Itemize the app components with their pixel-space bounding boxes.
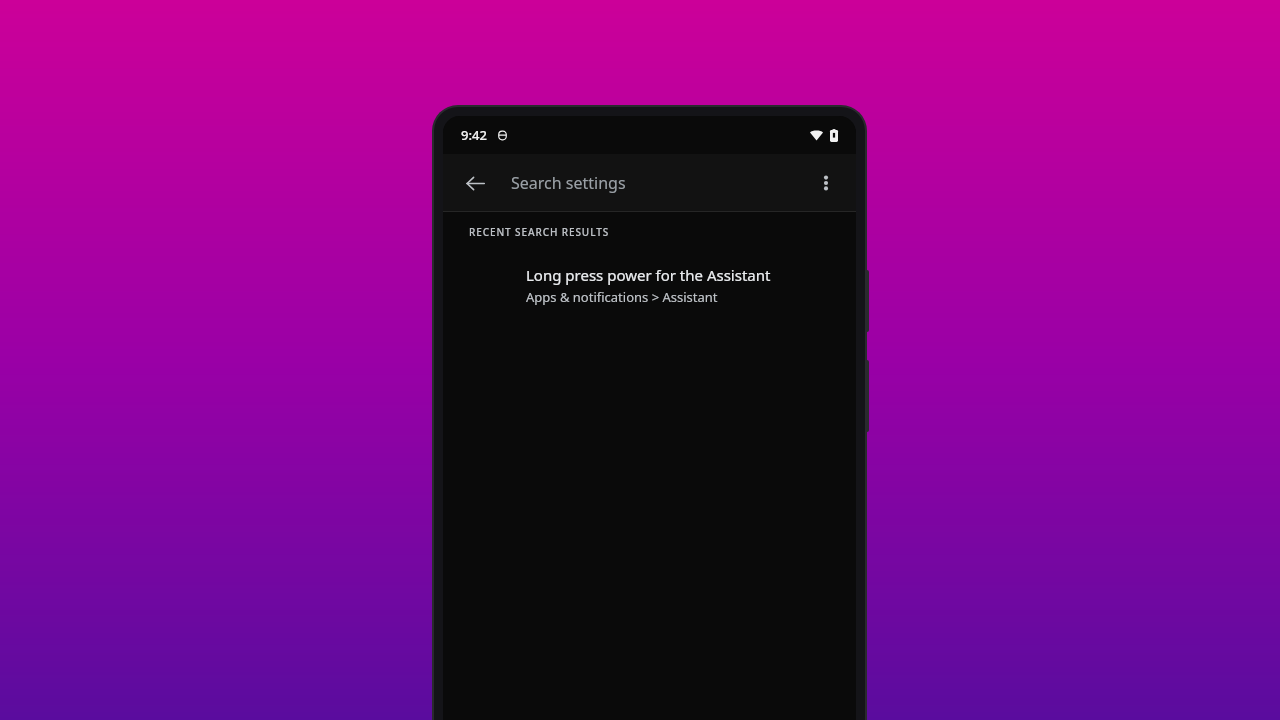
staticText: 9:42 xyxy=(461,126,487,144)
staticText: Long press power for the Assistant xyxy=(526,265,771,285)
button[interactable]: Long press power for the Assistant xyxy=(443,263,856,316)
staticText: Search settings xyxy=(511,172,804,194)
staticText: Apps & notifications > Assistant xyxy=(526,288,718,306)
button[interactable]: More options xyxy=(804,161,848,205)
staticText: RECENT SEARCH RESULTS xyxy=(469,225,610,239)
button[interactable]: Back xyxy=(453,161,497,205)
